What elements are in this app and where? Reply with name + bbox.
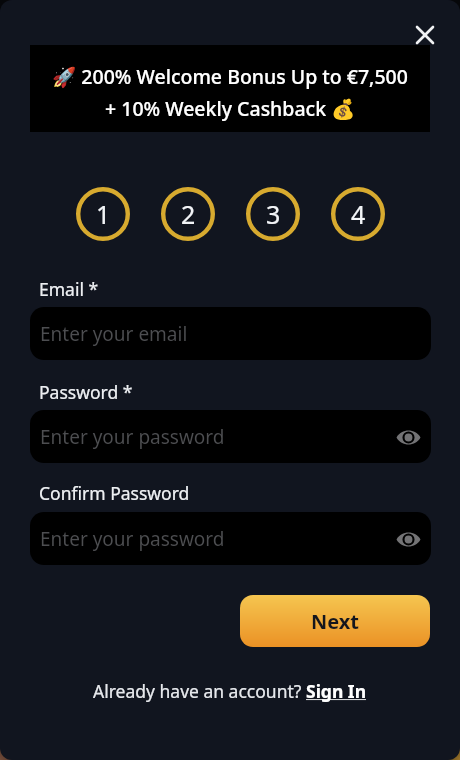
button[interactable]: Next (240, 595, 430, 647)
staticText: Password * (39, 380, 133, 404)
staticText: Already have an account? (93, 679, 306, 703)
button[interactable]: Show password (392, 523, 424, 555)
staticText: Enter your password (40, 424, 225, 450)
staticText: 3 (266, 197, 281, 231)
button[interactable]: Enter your email (30, 307, 431, 360)
button[interactable]: 4 (331, 187, 385, 241)
button[interactable]: 3 (246, 187, 300, 241)
button[interactable]: 2 (161, 187, 215, 241)
staticText: + 10% Weekly Cashback 💰 (105, 95, 356, 122)
button[interactable]: Sign In (306, 679, 367, 703)
staticText: Enter your email (40, 321, 188, 347)
staticText: 4 (351, 197, 366, 231)
button[interactable]: Enter your password (30, 512, 431, 565)
button[interactable]: Close (404, 14, 446, 56)
button[interactable]: Enter your password (30, 410, 431, 463)
staticText: Email * (39, 277, 99, 301)
button[interactable]: 1 (76, 187, 130, 241)
staticText: Confirm Password (39, 481, 190, 505)
staticText: Enter your password (40, 526, 225, 552)
staticText: Sign In (306, 679, 367, 703)
staticText: 🚀 200% Welcome Bonus Up to €7,500 (52, 63, 408, 90)
staticText: Next (311, 608, 360, 635)
staticText: 2 (181, 197, 196, 231)
button[interactable]: Show password (392, 421, 424, 453)
staticText: 1 (96, 197, 111, 231)
